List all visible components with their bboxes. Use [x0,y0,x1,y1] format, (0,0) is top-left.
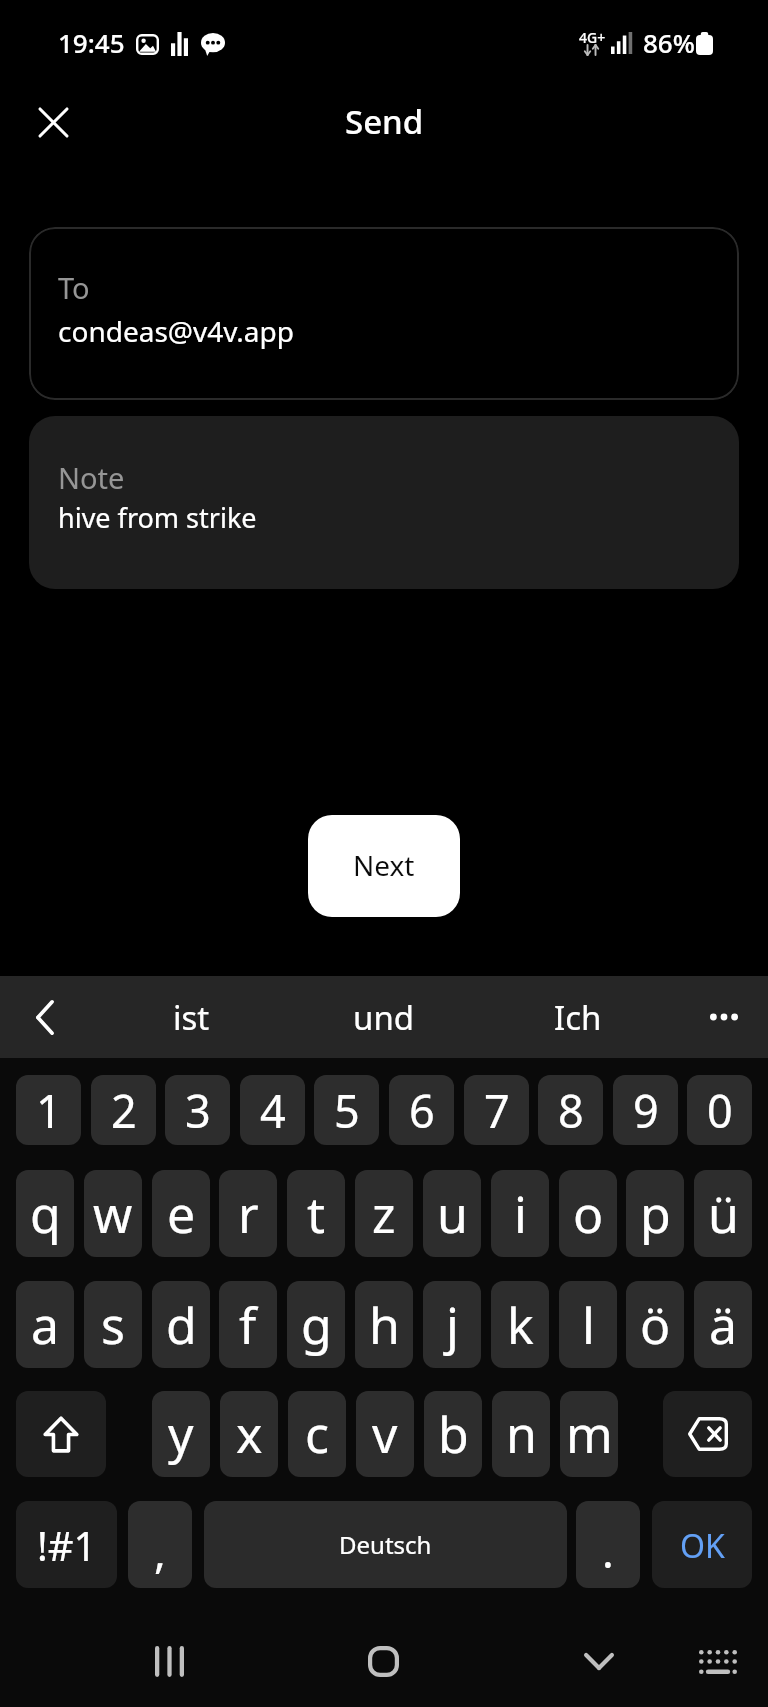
button[interactable]: Hide keyboard [678,1616,758,1706]
button[interactable]: q [16,1170,74,1257]
button[interactable]: 9 [613,1075,678,1145]
button[interactable]: m [560,1391,618,1477]
button[interactable]: k [491,1281,549,1368]
staticText: 9 [633,1080,659,1141]
button[interactable]: 2 [91,1075,156,1145]
staticText: z [372,1180,396,1248]
button[interactable]: ist [121,976,261,1058]
staticText: . [602,1521,614,1581]
button[interactable]: Close [19,88,87,156]
button[interactable]: n [492,1391,550,1477]
staticText: Next [353,846,415,884]
staticText: u [437,1180,468,1248]
button[interactable]: w [84,1170,142,1257]
staticText: v [372,1400,398,1468]
staticText: 86% [643,25,695,60]
button[interactable]: 6 [389,1075,454,1145]
button[interactable]: Home [343,1616,423,1706]
staticText: 0 [707,1080,733,1141]
button[interactable]: s [84,1281,142,1368]
button[interactable]: o [559,1170,617,1257]
staticText: 7 [484,1080,510,1141]
staticText: To [58,268,90,307]
button[interactable]: 0 [687,1075,752,1145]
button[interactable]: . [576,1501,640,1588]
staticText: 1 [36,1080,62,1141]
staticText: und [353,995,415,1040]
staticText: 3 [185,1080,211,1141]
staticText: ä [709,1291,738,1359]
staticText: 4 [260,1080,286,1141]
button[interactable]: , [128,1501,192,1588]
staticText: q [30,1180,61,1248]
staticText: k [507,1291,534,1359]
button[interactable]: e [152,1170,210,1257]
staticText: 8 [558,1080,584,1141]
staticText: !#1 [37,1518,97,1572]
button[interactable]: Note [29,416,739,589]
button[interactable]: p [626,1170,684,1257]
staticText: r [238,1180,259,1248]
button[interactable]: Backspace [663,1391,752,1477]
staticText: 4G+ [579,28,606,47]
button[interactable]: Back [559,1616,639,1706]
staticText: Note [58,458,125,497]
button[interactable]: Shift [16,1391,106,1477]
button[interactable]: i [491,1170,549,1257]
button[interactable]: a [16,1281,74,1368]
staticText: h [369,1291,400,1359]
button[interactable]: 4 [240,1075,305,1145]
staticText: d [166,1291,197,1359]
staticText: b [438,1400,469,1468]
button[interactable]: b [424,1391,482,1477]
staticText: f [239,1291,257,1359]
button[interactable]: Previous suggestions [6,976,84,1058]
button[interactable]: 5 [314,1075,379,1145]
staticText: y [168,1400,194,1468]
button[interactable]: 7 [464,1075,529,1145]
button[interactable]: ä [694,1281,752,1368]
button[interactable]: 1 [16,1075,81,1145]
staticText: j [446,1291,459,1359]
staticText: l [582,1291,595,1359]
staticText: 5 [334,1080,360,1141]
button[interactable]: r [219,1170,277,1257]
staticText: c [305,1400,329,1468]
button[interactable]: ü [694,1170,752,1257]
button[interactable]: To [29,227,739,400]
button[interactable]: d [152,1281,210,1368]
staticText: n [506,1400,537,1468]
button[interactable]: t [287,1170,345,1257]
staticText: hive from strike [58,499,257,536]
button[interactable]: g [287,1281,345,1368]
staticText: m [566,1400,613,1468]
button[interactable]: y [152,1391,210,1477]
staticText: x [236,1400,263,1468]
staticText: w [93,1180,133,1248]
button[interactable]: 3 [165,1075,230,1145]
button[interactable]: Recents [129,1616,209,1706]
button[interactable]: Ich [508,976,648,1058]
staticText: OK [680,1524,725,1568]
button[interactable]: More options [684,976,764,1058]
button[interactable]: j [423,1281,481,1368]
staticText: Send [345,99,424,144]
button[interactable]: Next [308,815,460,917]
button[interactable]: OK [652,1501,752,1588]
button[interactable]: Deutsch [204,1501,567,1588]
button[interactable]: h [355,1281,413,1368]
button[interactable]: !#1 [16,1501,117,1588]
button[interactable]: 8 [538,1075,603,1145]
button[interactable]: v [356,1391,414,1477]
staticText: 19:45 [58,25,125,60]
button[interactable]: und [314,976,454,1058]
button[interactable]: c [288,1391,346,1477]
staticText: condeas@v4v.app [58,312,294,350]
button[interactable]: z [355,1170,413,1257]
staticText: i [514,1180,527,1248]
button[interactable]: ö [626,1281,684,1368]
button[interactable]: u [423,1170,481,1257]
button[interactable]: x [220,1391,278,1477]
button[interactable]: l [559,1281,617,1368]
button[interactable]: f [219,1281,277,1368]
